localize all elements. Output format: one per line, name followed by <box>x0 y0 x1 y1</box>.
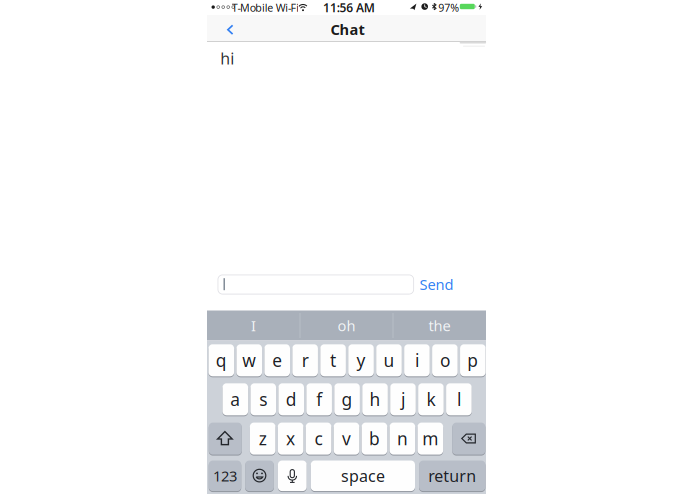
button[interactable]: space <box>311 460 415 492</box>
staticText: z <box>259 427 267 450</box>
staticText: 11:56 AM <box>323 0 375 15</box>
button[interactable]: q <box>208 344 234 377</box>
button[interactable]: w <box>236 344 262 377</box>
staticText: d <box>286 388 297 411</box>
staticText: q <box>216 349 227 372</box>
staticText: g <box>342 388 353 411</box>
button[interactable]: I <box>208 310 299 340</box>
button[interactable]: Delete <box>452 422 485 455</box>
button[interactable]: t <box>320 344 346 377</box>
staticText: oh <box>337 316 355 335</box>
staticText: 123 <box>213 466 237 486</box>
staticText: p <box>467 349 478 372</box>
button[interactable]: j <box>390 383 416 416</box>
button[interactable]: a <box>222 383 248 416</box>
staticText: f <box>316 388 322 411</box>
staticText: r <box>302 349 309 372</box>
staticText: return <box>428 465 476 486</box>
button[interactable]: Back <box>225 24 237 36</box>
button[interactable]: d <box>278 383 304 416</box>
button[interactable]: r <box>292 344 318 377</box>
staticText: u <box>383 349 394 372</box>
button[interactable]: n <box>390 422 415 455</box>
staticText: t <box>330 349 336 372</box>
staticText: a <box>230 388 240 411</box>
button[interactable]: Emoji <box>245 460 274 492</box>
staticText: m <box>422 427 438 450</box>
button[interactable]: g <box>334 383 360 416</box>
button[interactable]: y <box>348 344 374 377</box>
button[interactable]: oh <box>301 310 392 340</box>
button[interactable]: p <box>460 344 486 377</box>
button[interactable]: the <box>394 310 485 340</box>
staticText: e <box>272 349 282 372</box>
staticText: k <box>426 388 435 411</box>
staticText: j <box>401 388 405 411</box>
staticText: l <box>457 388 461 411</box>
button[interactable]: b <box>362 422 387 455</box>
button[interactable]: o <box>432 344 458 377</box>
staticText: c <box>315 427 323 450</box>
button[interactable]: return <box>419 460 485 492</box>
staticText: T-Mobile Wi-Fi <box>232 0 299 15</box>
staticText: space <box>341 465 385 486</box>
staticText: I <box>251 316 256 335</box>
staticText: b <box>369 427 380 450</box>
staticText: Send <box>420 275 454 294</box>
button[interactable]: Send <box>413 274 461 294</box>
button[interactable]: m <box>418 422 443 455</box>
button[interactable]: l <box>446 383 472 416</box>
staticText: h <box>370 388 381 411</box>
staticText: s <box>259 388 267 411</box>
button[interactable]: u <box>376 344 402 377</box>
staticText: Chat <box>330 19 364 39</box>
button[interactable]: c <box>306 422 331 455</box>
staticText: w <box>242 349 256 372</box>
button[interactable]: v <box>334 422 359 455</box>
button[interactable]: Shift <box>209 422 242 455</box>
button[interactable]: Dictate <box>278 460 307 492</box>
staticText: the <box>428 316 450 335</box>
button[interactable]: k <box>418 383 444 416</box>
button[interactable]: s <box>250 383 276 416</box>
button[interactable]: i <box>404 344 430 377</box>
button[interactable]: x <box>278 422 303 455</box>
button[interactable]: z <box>250 422 275 455</box>
staticText: y <box>357 349 366 372</box>
staticText: v <box>342 427 351 450</box>
staticText: 97% <box>438 0 459 15</box>
staticText: hi <box>220 48 234 69</box>
button[interactable]: f <box>306 383 332 416</box>
staticText: x <box>286 427 295 450</box>
staticText: n <box>397 427 408 450</box>
button[interactable]: e <box>264 344 290 377</box>
staticText: i <box>415 349 419 372</box>
button[interactable]: 123 <box>209 460 241 492</box>
button[interactable]: h <box>362 383 388 416</box>
staticText: o <box>440 349 450 372</box>
